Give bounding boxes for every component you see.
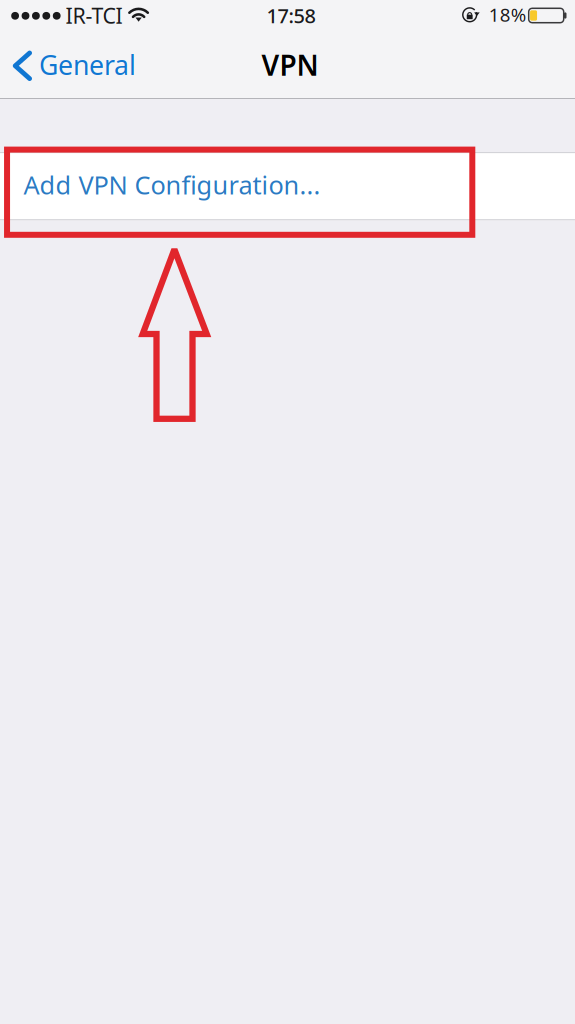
button[interactable]: Add VPN Configuration... [0, 152, 575, 220]
staticText: 18% [489, 2, 527, 27]
staticText: IR-TCI [65, 1, 122, 30]
button[interactable]: Back to General [0, 39, 152, 98]
staticText: VPN [261, 46, 318, 84]
staticText: Add VPN Configuration... [23, 168, 320, 201]
staticText: General [39, 47, 136, 82]
staticText: 17:58 [266, 2, 315, 29]
